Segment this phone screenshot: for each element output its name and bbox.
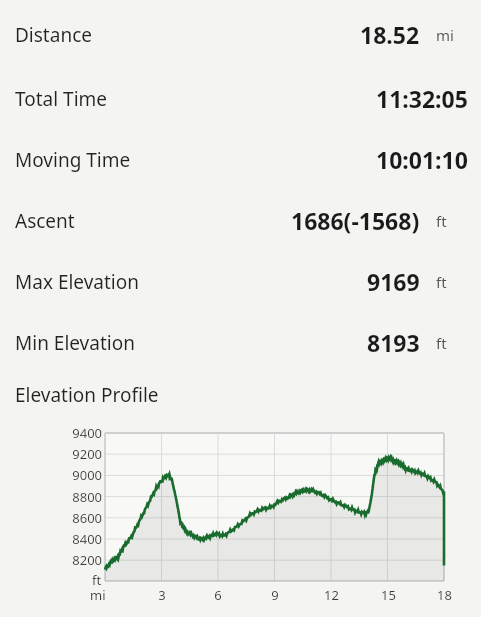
staticText: 8400 [72,530,102,548]
staticText: 9169 [367,266,420,297]
staticText: ft [436,272,447,292]
button[interactable]: Moving Time [0,129,481,190]
staticText: 18.52 [360,19,420,50]
staticText: 8200 [72,551,102,569]
staticText: ft [436,333,447,353]
staticText: 1686(-1568) [291,205,420,236]
staticText: 6 [214,586,222,604]
button[interactable]: Elevation profile chart [0,417,481,617]
staticText: Max Elevation [15,269,139,295]
staticText: Distance [15,22,92,48]
staticText: 10:01:10 [376,144,468,175]
button[interactable]: Min Elevation [0,312,481,373]
staticText: ft [436,211,447,231]
staticText: 11:32:05 [376,83,468,114]
staticText: mi [436,25,454,45]
button[interactable]: Ascent [0,190,481,251]
button[interactable]: Distance [0,0,481,68]
staticText: 8193 [367,327,420,358]
staticText: Total Time [15,86,108,112]
button[interactable]: Max Elevation [0,251,481,312]
staticText: 8800 [72,488,102,506]
staticText: 18 [437,586,452,604]
staticText: 9400 [72,424,102,442]
staticText: ft [92,571,102,589]
staticText: 9000 [72,466,102,484]
staticText: Ascent [15,208,75,234]
staticText: 3 [158,586,166,604]
staticText: Moving Time [15,147,131,173]
button[interactable]: Total Time [0,68,481,129]
staticText: 8600 [72,509,102,527]
staticText: Min Elevation [15,330,135,356]
staticText: 9200 [72,445,102,463]
staticText: Elevation Profile [15,382,159,408]
staticText: 15 [381,586,396,604]
staticText: 12 [324,586,339,604]
staticText: 9 [271,586,279,604]
staticText: mi [90,586,106,604]
